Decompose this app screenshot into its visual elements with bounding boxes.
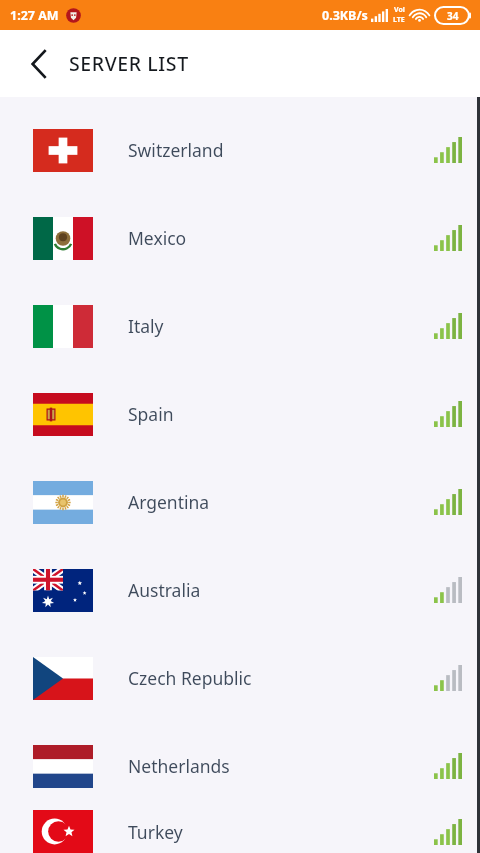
staticText: Australia <box>128 578 201 602</box>
staticText: 1:27 AM <box>10 7 59 24</box>
staticText: Mexico <box>128 226 187 250</box>
staticText: Turkey <box>128 820 183 844</box>
button[interactable]: Czech Republic <box>0 634 480 722</box>
staticText: 34 <box>447 9 459 23</box>
staticText: Czech Republic <box>128 666 252 690</box>
button[interactable]: Switzerland <box>0 106 480 194</box>
button[interactable]: Argentina <box>0 458 480 546</box>
staticText: Spain <box>128 402 174 426</box>
button[interactable]: Back <box>14 39 64 89</box>
button[interactable]: Spain <box>0 370 480 458</box>
staticText: Italy <box>128 314 164 338</box>
button[interactable]: Italy <box>0 282 480 370</box>
staticText: SERVER LIST <box>69 50 189 77</box>
button[interactable]: Turkey <box>0 810 480 853</box>
staticText: 0.3KB/s <box>322 7 368 24</box>
staticText: LTE <box>393 15 405 25</box>
button[interactable]: Australia <box>0 546 480 634</box>
staticText: Netherlands <box>128 754 230 778</box>
button[interactable]: Mexico <box>0 194 480 282</box>
button[interactable]: Netherlands <box>0 722 480 810</box>
staticText: Vol <box>394 5 405 15</box>
staticText: Switzerland <box>128 138 224 162</box>
staticText: Argentina <box>128 490 210 514</box>
